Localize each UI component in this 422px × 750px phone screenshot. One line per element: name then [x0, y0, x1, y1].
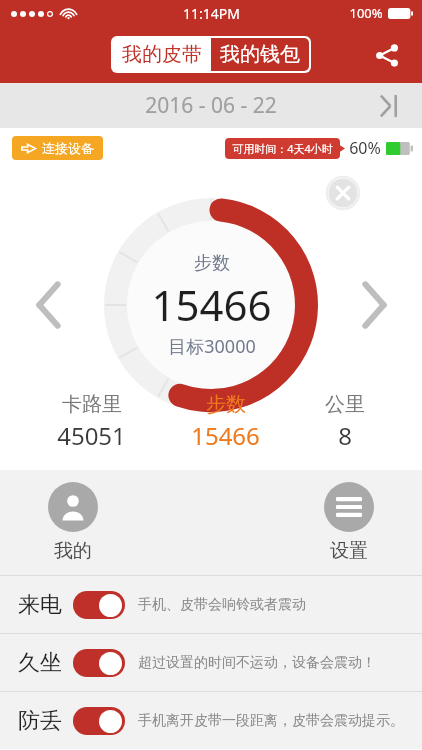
button[interactable]: Share	[366, 34, 408, 76]
staticText: 100%	[349, 4, 383, 22]
staticText: 设置	[330, 539, 368, 563]
button[interactable]: 设置	[320, 478, 378, 567]
staticText: 2016 - 06 - 22	[145, 91, 277, 120]
button[interactable]: Toggle	[73, 707, 125, 735]
staticText: 来电	[18, 591, 62, 619]
button[interactable]: 卡路里	[49, 390, 134, 454]
staticText: 我的皮带	[122, 42, 202, 67]
staticText: 目标30000	[168, 334, 256, 359]
button[interactable]: 连接设备	[12, 136, 103, 160]
button[interactable]: 公里	[317, 390, 373, 454]
button[interactable]: Next	[346, 277, 402, 333]
button[interactable]: 防丢	[0, 692, 422, 749]
staticText: 手机离开皮带一段距离，皮带会震动提示。	[138, 712, 404, 730]
button[interactable]: Toggle	[73, 649, 125, 677]
button[interactable]: 来电	[0, 576, 422, 633]
staticText: 超过设置的时间不运动，设备会震动！	[138, 654, 376, 672]
button[interactable]: Close	[326, 176, 360, 210]
staticText: 步数	[206, 392, 246, 417]
staticText: 8	[338, 419, 352, 452]
staticText: 60%	[349, 137, 381, 159]
button[interactable]: Toggle	[73, 591, 125, 619]
button[interactable]: 我的皮带	[113, 38, 211, 71]
button[interactable]: 我的	[44, 478, 102, 567]
staticText: 手机、皮带会响铃或者震动	[138, 596, 306, 614]
staticText: 步数	[194, 252, 230, 275]
button[interactable]: 久坐	[0, 634, 422, 691]
staticText: 防丢	[18, 707, 62, 735]
button[interactable]: Next day	[370, 88, 406, 124]
staticText: 15466	[191, 419, 260, 452]
staticText: 11:14PM	[183, 4, 240, 23]
staticText: 15466	[151, 276, 272, 333]
staticText: 我的钱包	[220, 42, 300, 67]
staticText: 可用时间：4天4小时	[232, 141, 333, 156]
staticText: 45051	[57, 419, 126, 452]
button[interactable]: 我的钱包	[211, 38, 309, 71]
staticText: 连接设备	[42, 140, 94, 156]
staticText: 公里	[325, 392, 365, 417]
staticText: 卡路里	[62, 392, 122, 417]
staticText: 我的	[54, 539, 92, 563]
button[interactable]: 步数	[183, 390, 268, 454]
button[interactable]: Previous	[20, 277, 76, 333]
staticText: 久坐	[18, 649, 62, 677]
